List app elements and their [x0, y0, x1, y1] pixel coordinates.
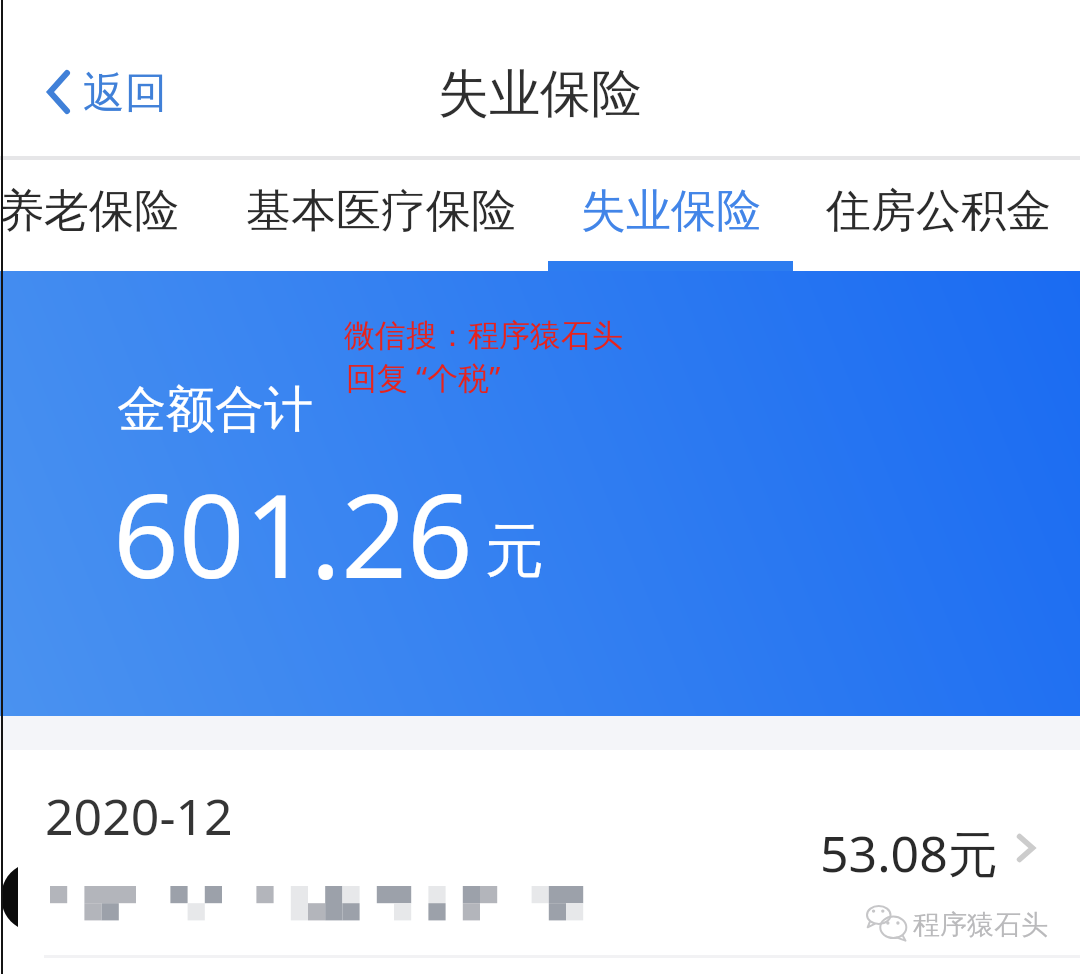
staticText: 程序猿石头	[913, 908, 1048, 942]
staticText: 返回	[83, 67, 167, 120]
button[interactable]: 2020-12	[0, 750, 1080, 956]
button[interactable]: 住房公积金	[812, 161, 1064, 271]
button[interactable]: Back	[28, 50, 184, 136]
staticText: 601.26	[113, 455, 473, 612]
staticText: 失业保险	[581, 183, 761, 240]
button[interactable]: 失业保险	[548, 161, 793, 271]
staticText: 2020-12	[45, 782, 233, 850]
staticText: 基本医疗保险	[246, 183, 516, 240]
staticText: 微信搜：程序猿石头	[344, 316, 623, 355]
staticText: 金额合计	[117, 379, 313, 441]
staticText: 养老保险	[0, 183, 179, 240]
staticText: 回复 “个税”	[346, 356, 501, 398]
button[interactable]: 基本医疗保险	[233, 161, 529, 271]
staticText: 53.08元	[820, 819, 998, 887]
button[interactable]: 养老保险	[0, 161, 192, 271]
staticText: 失业保险	[438, 62, 642, 126]
staticText: 元	[485, 514, 544, 588]
staticText: 住房公积金	[826, 183, 1051, 240]
